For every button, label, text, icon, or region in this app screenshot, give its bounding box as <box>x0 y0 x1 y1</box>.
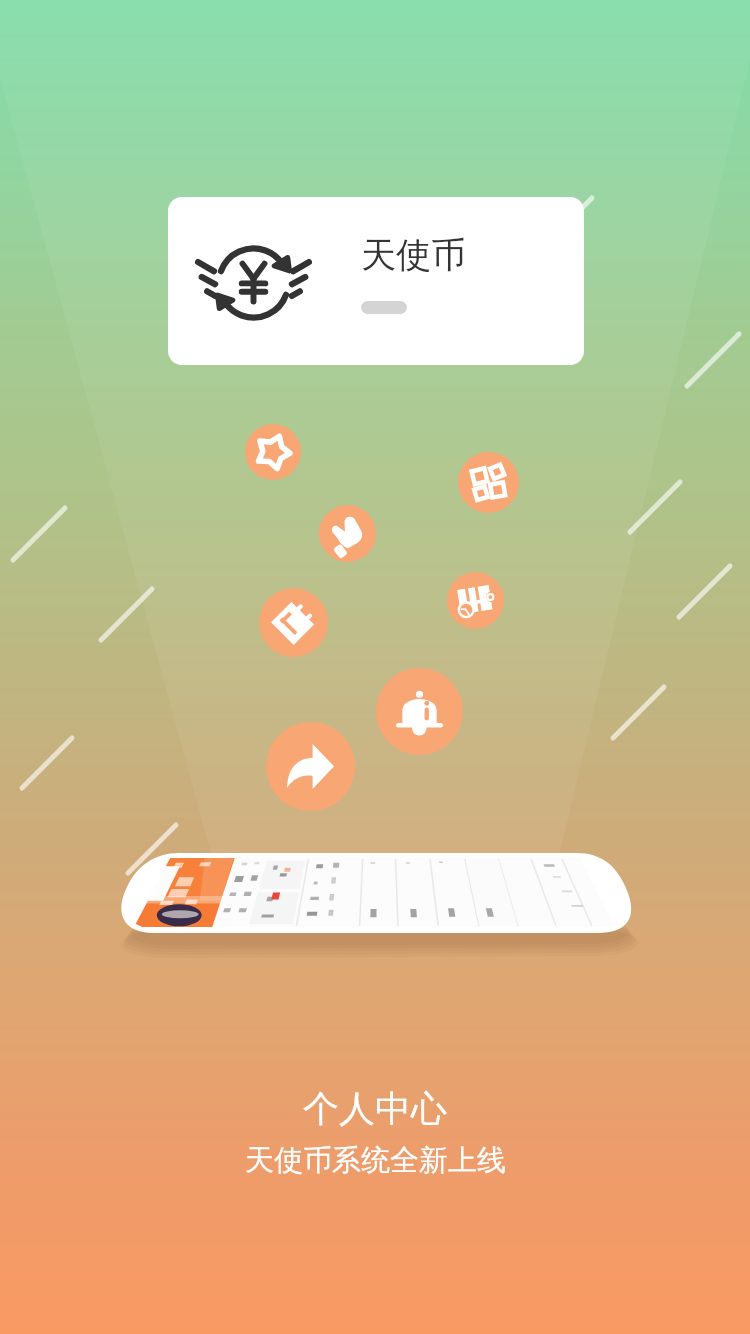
button[interactable]: Notifications <box>376 668 463 755</box>
staticText: 天使币 <box>361 233 466 277</box>
button[interactable]: Apps <box>458 452 519 513</box>
staticText: 个人中心 <box>303 1086 447 1131</box>
staticText: 天使币系统全新上线 <box>245 1142 506 1179</box>
button[interactable]: Coupons <box>447 572 504 629</box>
button[interactable]: Like <box>319 505 376 562</box>
button[interactable]: 天使币 <box>168 197 584 365</box>
button[interactable]: Favourite <box>245 424 301 480</box>
button[interactable]: Notes <box>259 588 328 657</box>
button[interactable]: Share <box>266 722 355 811</box>
